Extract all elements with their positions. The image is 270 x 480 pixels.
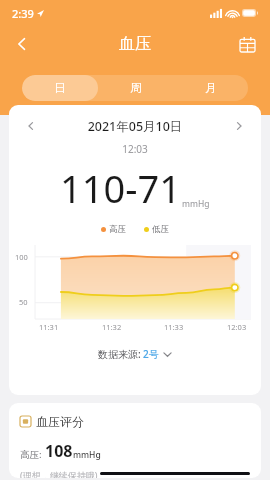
button[interactable]: 月: [173, 75, 248, 101]
button[interactable]: Next day: [229, 116, 249, 136]
staticText: 110-71: [60, 162, 181, 214]
staticText: 11:31: [39, 322, 59, 332]
button[interactable]: 日: [22, 75, 98, 101]
staticText: mmHg: [73, 449, 101, 461]
staticText: 108: [45, 440, 73, 462]
button[interactable]: Back: [6, 28, 38, 60]
staticText: 100: [15, 252, 28, 262]
staticText: 月: [205, 81, 217, 95]
staticText: 血压评分: [36, 414, 84, 429]
staticText: 2021年05月10日: [41, 118, 229, 135]
staticText: 11:33: [164, 322, 184, 332]
button[interactable]: Previous day: [21, 116, 41, 136]
button[interactable]: 周: [98, 75, 173, 101]
staticText: 50: [19, 297, 28, 307]
staticText: 低压: [152, 224, 169, 235]
staticText: 数据来源:: [98, 347, 141, 361]
staticText: 高压:: [20, 448, 42, 461]
staticText: 血压: [119, 34, 151, 54]
staticText: 12:03: [227, 322, 247, 332]
staticText: mmHg: [182, 198, 210, 210]
staticText: 11:32: [102, 322, 122, 332]
staticText: 周: [130, 81, 142, 95]
staticText: 日: [54, 81, 66, 95]
staticText: 高压: [109, 224, 126, 235]
button[interactable]: 数据来源:: [9, 347, 261, 361]
staticText: 12:03: [9, 142, 261, 156]
staticText: (理想，继续保持哦): [20, 469, 98, 478]
button[interactable]: Calendar: [232, 29, 262, 59]
staticText: 2:39: [12, 6, 34, 21]
staticText: 2号: [143, 347, 159, 361]
